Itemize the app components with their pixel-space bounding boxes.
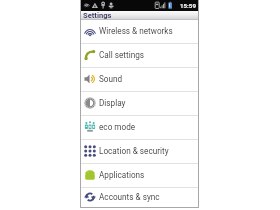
staticText: Accounts & sync — [99, 192, 160, 202]
button[interactable]: eco mode — [80, 116, 199, 140]
button[interactable]: Location & security — [80, 140, 199, 164]
staticText: Display — [99, 98, 126, 108]
staticText: 15:59 — [180, 2, 196, 9]
staticText: Wireless & networks — [99, 26, 173, 36]
staticText: Sound — [99, 74, 123, 84]
staticText: Call settings — [99, 50, 145, 60]
staticText: Settings — [83, 11, 112, 19]
button[interactable]: Wireless & networks — [80, 20, 199, 44]
button[interactable]: Display — [80, 92, 199, 116]
staticText: Applications — [99, 170, 145, 180]
button[interactable]: Sound — [80, 68, 199, 92]
button[interactable]: Call settings — [80, 44, 199, 68]
button[interactable]: Applications — [80, 164, 199, 188]
staticText: eco mode — [99, 122, 136, 132]
staticText: Location & security — [99, 146, 169, 156]
button[interactable]: Accounts & sync — [80, 188, 199, 208]
